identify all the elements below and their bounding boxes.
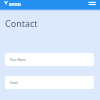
staticText: Contact: [5, 17, 38, 29]
staticText: Email: [10, 81, 18, 85]
button[interactable]: Menu: [86, 0, 98, 10]
button[interactable]: Your Name: [5, 53, 94, 66]
button[interactable]: AUTOSEU: [4, 0, 20, 9]
staticText: Your Name: [10, 58, 27, 62]
button[interactable]: Email: [5, 76, 94, 89]
staticText: AUTOSEU: [9, 3, 22, 7]
